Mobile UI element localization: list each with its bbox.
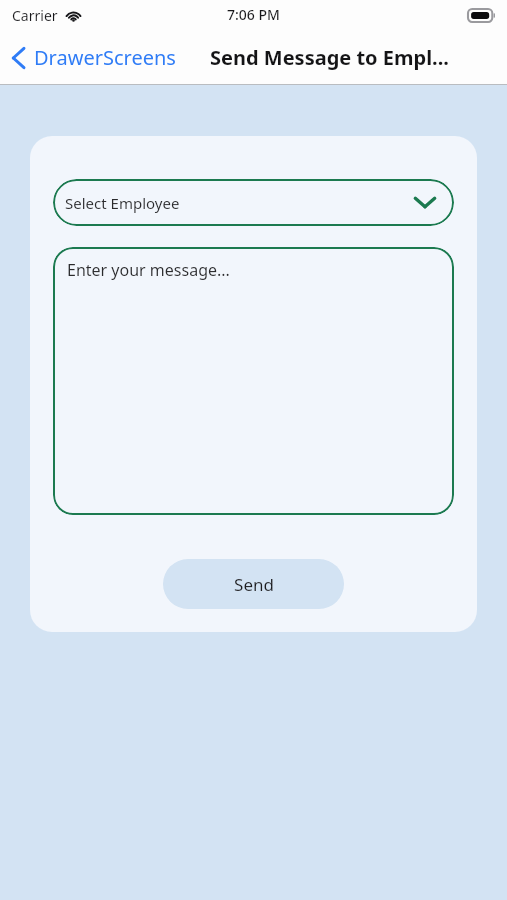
staticText: Send — [234, 573, 274, 596]
button[interactable]: Select Employee — [53, 179, 454, 226]
button[interactable]: Back to DrawerScreens — [0, 38, 182, 77]
staticText: Send Message to Empl... — [210, 44, 449, 71]
staticText: DrawerScreens — [34, 44, 176, 71]
staticText: Select Employee — [65, 193, 180, 213]
staticText: Carrier — [12, 6, 58, 25]
button[interactable]: Enter your message... — [53, 247, 454, 515]
button[interactable]: Send — [163, 559, 344, 609]
staticText: 7:06 PM — [227, 5, 280, 24]
staticText: Enter your message... — [67, 259, 230, 281]
